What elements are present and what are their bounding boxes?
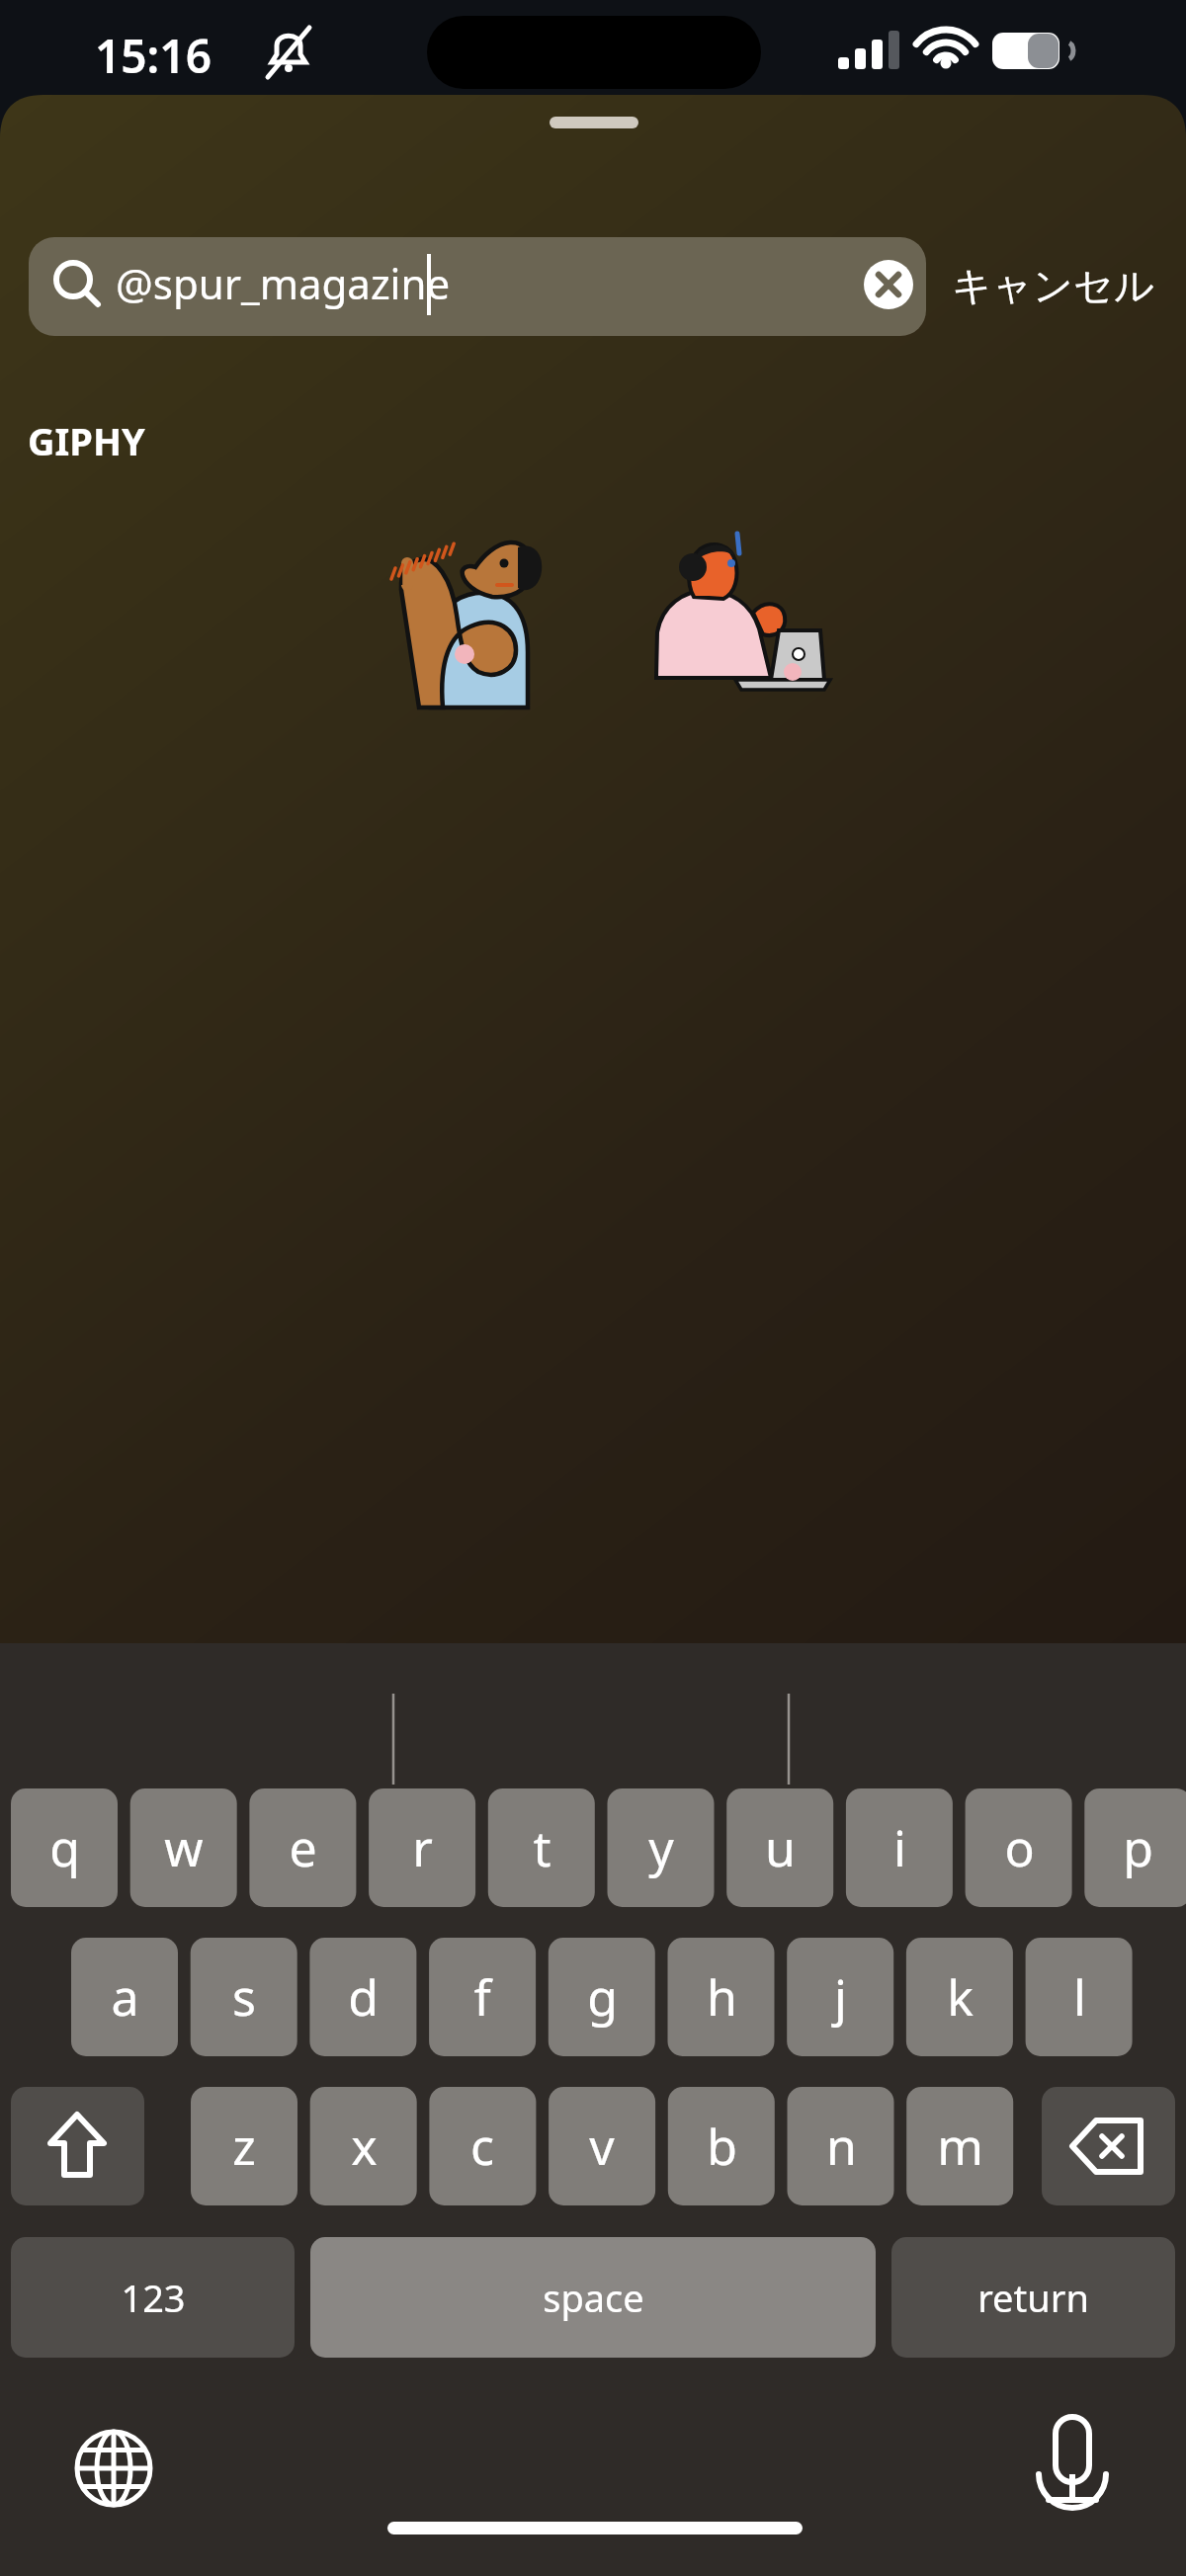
staticText: v <box>589 2113 615 2180</box>
staticText: o <box>1004 1814 1035 1881</box>
button[interactable]: w <box>130 1788 237 1907</box>
button[interactable]: o <box>966 1788 1072 1907</box>
button[interactable]: t <box>488 1788 595 1907</box>
staticText: space <box>543 2272 644 2323</box>
button[interactable]: b <box>668 2087 775 2205</box>
staticText: e <box>289 1814 317 1881</box>
staticText: 15:16 <box>95 25 212 87</box>
staticText: l <box>1073 1963 1086 2031</box>
staticText: y <box>648 1814 674 1881</box>
button[interactable]: Sticker: person with laptop <box>642 534 845 700</box>
button[interactable]: Shift <box>11 2087 144 2205</box>
staticText: @spur_magazine <box>116 255 451 311</box>
button[interactable]: return <box>891 2237 1175 2358</box>
button[interactable]: Clear search text <box>852 247 929 324</box>
button[interactable]: j <box>787 1938 893 2056</box>
button[interactable]: e <box>249 1788 356 1907</box>
staticText: w <box>164 1814 204 1881</box>
staticText: p <box>1123 1814 1153 1881</box>
staticText: 123 <box>121 2272 186 2323</box>
button[interactable]: q <box>11 1788 118 1907</box>
button[interactable]: a <box>71 1938 178 2056</box>
button[interactable]: m <box>906 2087 1013 2205</box>
button[interactable]: r <box>369 1788 475 1907</box>
staticText: g <box>587 1963 618 2031</box>
staticText: n <box>826 2113 857 2180</box>
staticText: d <box>348 1963 379 2031</box>
staticText: x <box>351 2113 378 2180</box>
button[interactable]: h <box>668 1938 775 2056</box>
button[interactable]: i <box>846 1788 953 1907</box>
staticText: b <box>707 2113 737 2180</box>
button[interactable]: v <box>549 2087 655 2205</box>
staticText: a <box>111 1963 139 2031</box>
staticText: GIPHY <box>28 415 145 466</box>
button[interactable]: k <box>906 1938 1013 2056</box>
staticText: キャンセル <box>952 261 1154 310</box>
button[interactable]: f <box>429 1938 536 2056</box>
button[interactable]: space <box>310 2237 876 2358</box>
button[interactable]: x <box>310 2087 417 2205</box>
staticText: i <box>893 1814 906 1881</box>
staticText: k <box>947 1963 974 2031</box>
button[interactable]: z <box>191 2087 297 2205</box>
staticText: j <box>834 1963 847 2031</box>
button[interactable]: Dictation <box>1016 2409 1130 2523</box>
staticText: r <box>412 1814 433 1881</box>
button[interactable]: n <box>788 2087 894 2205</box>
staticText: c <box>470 2113 494 2180</box>
staticText: z <box>232 2113 256 2180</box>
staticText: f <box>473 1963 491 2031</box>
button[interactable]: Sticker: I voted dog <box>381 541 544 717</box>
button[interactable]: Backspace <box>1042 2087 1175 2205</box>
button[interactable]: Switch keyboard <box>57 2411 171 2525</box>
button[interactable]: y <box>608 1788 715 1907</box>
button[interactable]: d <box>309 1938 416 2056</box>
button[interactable]: c <box>429 2087 536 2205</box>
staticText: s <box>232 1963 256 2031</box>
button[interactable]: u <box>726 1788 833 1907</box>
button[interactable]: s <box>191 1938 297 2056</box>
button[interactable]: p <box>1084 1788 1186 1907</box>
staticText: return <box>977 2272 1089 2323</box>
button[interactable]: l <box>1026 1938 1133 2056</box>
staticText: u <box>765 1814 796 1881</box>
staticText: t <box>533 1814 551 1881</box>
button[interactable]: g <box>549 1938 655 2056</box>
button[interactable]: 123 <box>11 2237 295 2358</box>
staticText: q <box>49 1814 80 1881</box>
staticText: h <box>707 1963 737 2031</box>
button[interactable]: キャンセル <box>952 244 1159 327</box>
staticText: m <box>937 2113 983 2180</box>
